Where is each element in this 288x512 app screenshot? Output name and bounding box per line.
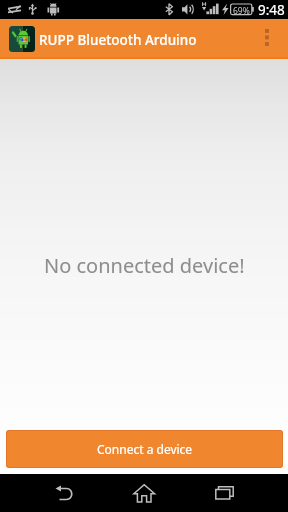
- button[interactable]: Recent apps: [203, 474, 245, 512]
- staticText: 69%: [233, 5, 250, 17]
- staticText: No connected device!: [44, 252, 245, 279]
- button[interactable]: Back: [44, 474, 85, 512]
- staticText: 9:48: [258, 1, 285, 19]
- staticText: Connect a device: [97, 441, 193, 457]
- button[interactable]: More options: [245, 19, 288, 57]
- button[interactable]: Connect a device: [6, 430, 283, 468]
- button[interactable]: Home: [123, 474, 165, 512]
- staticText: RUPP Bluetooth Arduino: [39, 31, 197, 49]
